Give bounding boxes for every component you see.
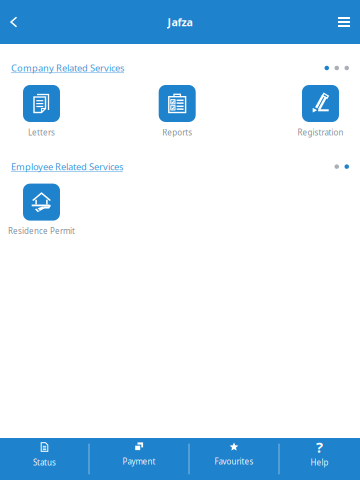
staticText: Jafza — [167, 15, 192, 29]
button[interactable]: Favourites — [189, 438, 278, 480]
button[interactable]: Reports — [136, 85, 219, 138]
button[interactable]: Menu — [320, 0, 360, 44]
button[interactable]: Status — [0, 438, 88, 480]
button[interactable]: Residence Permit — [0, 184, 83, 236]
staticText: Employee Related Services — [11, 160, 123, 173]
staticText: Letters — [28, 127, 55, 138]
button[interactable]: Registration — [279, 85, 360, 138]
button[interactable]: Back — [0, 0, 34, 44]
button[interactable]: ? — [279, 438, 359, 480]
button[interactable]: Letters — [0, 85, 83, 138]
staticText: ? — [316, 437, 323, 457]
staticText: Reports — [162, 127, 192, 138]
staticText: Registration — [297, 127, 343, 138]
staticText: Favourites — [214, 456, 253, 467]
staticText: Help — [310, 457, 328, 468]
staticText: Status — [33, 457, 56, 468]
button[interactable]: Payment — [89, 438, 188, 480]
staticText: Payment — [122, 456, 155, 467]
staticText: Residence Permit — [8, 226, 75, 236]
staticText: Company Related Services — [11, 62, 124, 74]
